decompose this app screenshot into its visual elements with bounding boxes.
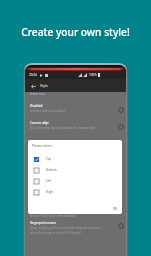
staticText: Fingerprint sensor	[30, 221, 57, 225]
button[interactable]: Camera edge	[25, 119, 126, 135]
staticText: Disabled	[30, 104, 43, 108]
staticText: Create your own style!	[0, 25, 151, 39]
button[interactable]: Fingerprint sensor	[25, 219, 126, 239]
button[interactable]: Disabled	[25, 102, 126, 118]
staticText: Camera edge	[30, 121, 49, 125]
button[interactable]: Bottom	[28, 165, 122, 175]
staticText: 100%	[89, 73, 97, 77]
button[interactable]: OK	[113, 207, 122, 214]
staticText: 20:34	[29, 73, 37, 77]
staticText: Screen is on	[30, 92, 45, 96]
staticText: Show a lighting effect around the finger…	[30, 226, 101, 230]
staticText: Lighting effect is disabled	[30, 109, 65, 113]
staticText: Right	[46, 190, 54, 194]
button[interactable]: Left	[28, 176, 122, 186]
staticText: OK	[113, 207, 118, 211]
button[interactable]: Back	[29, 82, 37, 90]
staticText: when the phone is locked (S10 family)	[30, 231, 82, 235]
staticText: Show the edge lighting around the camera…	[30, 126, 96, 130]
staticText: Shows a 'LED' dot in the statusbar	[30, 214, 76, 218]
staticText: Top	[46, 157, 52, 161]
staticText: Style	[40, 83, 49, 88]
staticText: Left	[46, 179, 52, 183]
staticText: Bottom	[46, 168, 57, 172]
staticText: Please select:	[32, 143, 53, 147]
button[interactable]: Top	[28, 154, 122, 164]
button[interactable]: Right	[28, 187, 122, 197]
